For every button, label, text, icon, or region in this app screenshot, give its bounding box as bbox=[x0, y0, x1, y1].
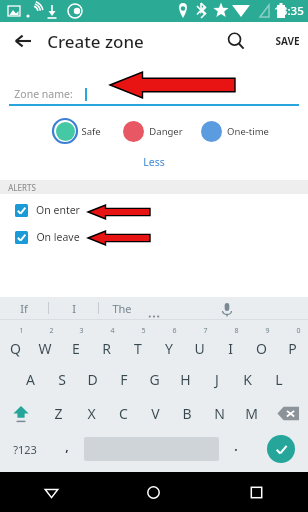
button[interactable]: H bbox=[170, 362, 201, 396]
staticText: On leave bbox=[36, 230, 80, 244]
button[interactable]: K bbox=[232, 362, 263, 396]
staticText: Zone name: bbox=[14, 87, 73, 101]
staticText: O bbox=[256, 339, 267, 358]
staticText: R bbox=[102, 339, 111, 358]
button[interactable]: If bbox=[0, 297, 48, 319]
staticText: A bbox=[26, 370, 35, 389]
staticText: 9 bbox=[265, 326, 270, 336]
button[interactable]: R bbox=[91, 328, 122, 362]
button[interactable]: B bbox=[171, 396, 203, 430]
button[interactable]: S bbox=[46, 362, 77, 396]
button[interactable]: Y bbox=[153, 328, 184, 362]
staticText: , bbox=[65, 438, 69, 454]
staticText: L bbox=[275, 370, 283, 389]
button[interactable]: C bbox=[107, 396, 139, 430]
staticText: Y bbox=[165, 339, 173, 358]
staticText: U bbox=[194, 339, 205, 358]
button[interactable]: Less bbox=[133, 153, 175, 171]
staticText: G bbox=[149, 370, 160, 389]
staticText: X bbox=[87, 404, 96, 423]
staticText: S bbox=[58, 370, 66, 389]
button[interactable]: G bbox=[139, 362, 170, 396]
button[interactable]: F bbox=[108, 362, 139, 396]
staticText: One-time bbox=[227, 125, 269, 138]
button[interactable]: Safe bbox=[52, 118, 101, 144]
staticText: The bbox=[112, 301, 132, 316]
staticText: K bbox=[243, 370, 252, 389]
button[interactable]: I bbox=[215, 328, 246, 362]
button[interactable]: E bbox=[60, 328, 91, 362]
staticText: B bbox=[182, 404, 192, 423]
button[interactable]: Home bbox=[102, 472, 205, 512]
button[interactable]: U bbox=[184, 328, 215, 362]
button[interactable]: One-time bbox=[198, 118, 269, 144]
button[interactable]: X bbox=[75, 396, 107, 430]
staticText: I bbox=[228, 339, 233, 358]
button[interactable]: N bbox=[203, 396, 235, 430]
button[interactable]: M bbox=[235, 396, 267, 430]
button[interactable]: L bbox=[263, 362, 294, 396]
button[interactable]: A bbox=[14, 362, 46, 396]
staticText: J bbox=[215, 370, 219, 389]
button[interactable]: Back bbox=[8, 26, 38, 56]
button[interactable]: I bbox=[49, 297, 98, 319]
button[interactable]: W bbox=[30, 328, 60, 362]
button[interactable]: Z bbox=[42, 396, 75, 430]
button[interactable]: Recents bbox=[205, 472, 308, 512]
button[interactable]: O bbox=[246, 328, 277, 362]
staticText: N bbox=[214, 404, 225, 423]
button[interactable]: J bbox=[201, 362, 232, 396]
staticText: 13:35 bbox=[274, 3, 304, 19]
button[interactable]: Zone name: bbox=[9, 82, 299, 106]
button[interactable]: SAVE bbox=[275, 34, 300, 48]
staticText: . bbox=[234, 438, 238, 454]
staticText: D bbox=[87, 370, 98, 389]
staticText: Safe bbox=[81, 125, 101, 138]
button[interactable]: Back bbox=[0, 472, 102, 512]
staticText: E bbox=[72, 339, 80, 358]
button[interactable]: Shift bbox=[0, 396, 42, 430]
button[interactable]: Q bbox=[0, 328, 30, 362]
staticText: V bbox=[151, 404, 160, 423]
button[interactable]: V bbox=[139, 396, 171, 430]
button[interactable]: On enter bbox=[0, 201, 308, 219]
staticText: 5 bbox=[141, 326, 146, 336]
staticText: M bbox=[245, 404, 258, 423]
staticText: ALERTS bbox=[8, 182, 36, 193]
button[interactable]: Done bbox=[253, 430, 308, 468]
button[interactable]: P bbox=[277, 328, 308, 362]
button[interactable]: Voice input bbox=[145, 297, 308, 319]
staticText: C bbox=[119, 404, 128, 423]
staticText: W bbox=[38, 339, 52, 358]
staticText: 8 bbox=[234, 326, 239, 336]
staticText: P bbox=[288, 339, 297, 358]
button[interactable]: D bbox=[77, 362, 108, 396]
button[interactable]: Backspace bbox=[267, 396, 308, 430]
button[interactable]: , bbox=[50, 430, 84, 468]
staticText: I bbox=[72, 301, 76, 316]
staticText: On enter bbox=[36, 203, 80, 217]
staticText: H bbox=[180, 370, 191, 389]
button[interactable]: On leave bbox=[0, 228, 308, 246]
staticText: Create zone bbox=[47, 30, 144, 53]
staticText: T bbox=[134, 339, 142, 358]
staticText: SAVE bbox=[275, 34, 300, 48]
staticText: 2 bbox=[49, 326, 54, 336]
staticText: 4 bbox=[110, 326, 115, 336]
staticText: 6 bbox=[172, 326, 177, 336]
staticText: ?123 bbox=[13, 442, 37, 457]
staticText: 1 bbox=[19, 326, 24, 336]
button[interactable]: ?123 bbox=[0, 430, 50, 468]
staticText: Less bbox=[143, 155, 165, 169]
button[interactable]: . bbox=[219, 430, 253, 468]
staticText: If bbox=[20, 301, 28, 316]
staticText: Danger bbox=[149, 125, 183, 138]
button[interactable]: The bbox=[99, 297, 145, 319]
staticText: 3 bbox=[79, 326, 84, 336]
staticText: Z bbox=[54, 404, 63, 423]
staticText: 7 bbox=[203, 326, 208, 336]
button[interactable]: Danger bbox=[120, 118, 183, 144]
button[interactable]: T bbox=[122, 328, 153, 362]
button[interactable]: Search bbox=[221, 26, 251, 56]
